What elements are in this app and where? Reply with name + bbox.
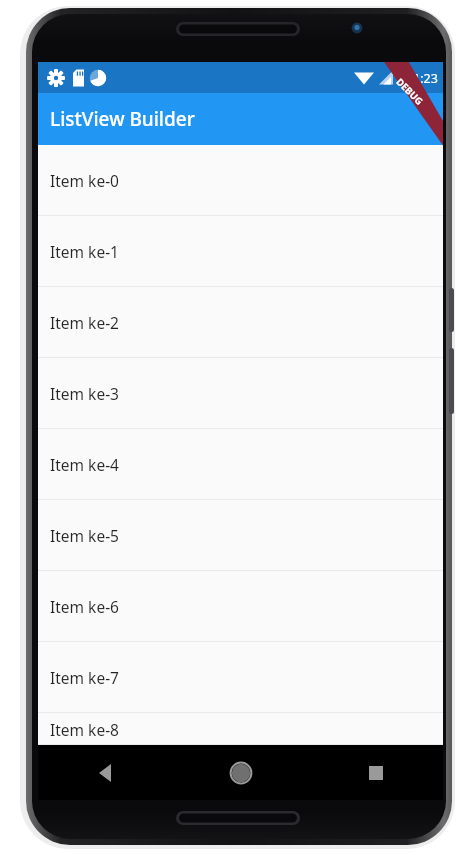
staticText: DEBUG [393, 75, 426, 108]
staticText: 1:23 [413, 70, 438, 87]
button[interactable]: Recent apps [308, 745, 443, 800]
button[interactable]: Item ke-1 [38, 216, 443, 287]
button[interactable]: Item ke-3 [38, 358, 443, 429]
button[interactable]: Item ke-6 [38, 571, 443, 642]
staticText: Item ke-6 [50, 596, 119, 617]
staticText: Item ke-3 [50, 383, 119, 404]
staticText: Item ke-1 [50, 241, 119, 262]
staticText: Item ke-5 [50, 525, 119, 546]
button[interactable]: Back [38, 745, 173, 800]
button[interactable]: Item ke-8 [38, 713, 443, 745]
staticText: ListView Builder [50, 106, 195, 132]
button[interactable]: Item ke-7 [38, 642, 443, 713]
button[interactable]: Item ke-4 [38, 429, 443, 500]
staticText: Item ke-0 [50, 170, 119, 191]
staticText: Item ke-4 [50, 454, 119, 475]
staticText: Item ke-2 [50, 312, 119, 333]
button[interactable]: Item ke-5 [38, 500, 443, 571]
staticText: Item ke-7 [50, 667, 119, 688]
button[interactable]: Item ke-0 [38, 145, 443, 216]
staticText: Item ke-8 [50, 719, 119, 740]
button[interactable]: Home [173, 745, 308, 800]
button[interactable]: Item ke-2 [38, 287, 443, 358]
